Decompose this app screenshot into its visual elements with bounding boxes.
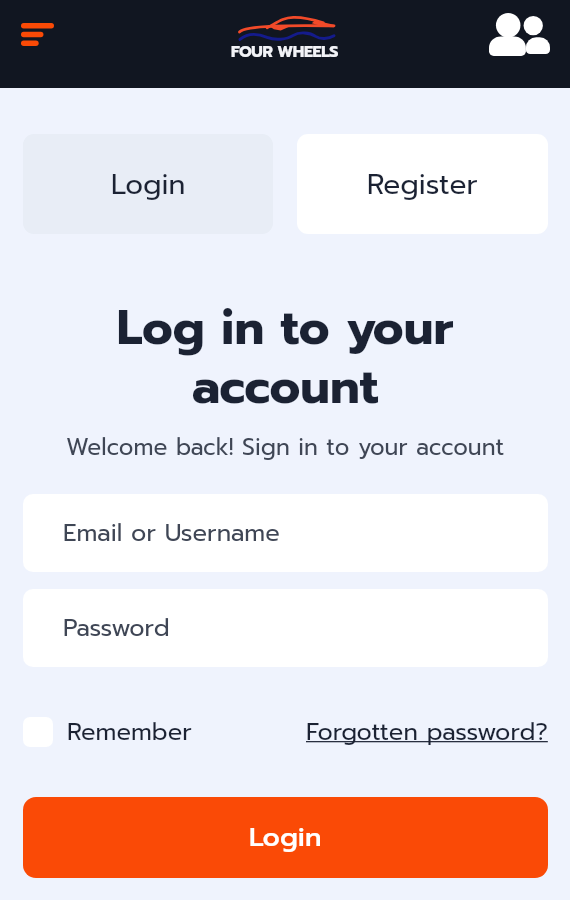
button[interactable]: Account [480, 6, 558, 82]
staticText: Email or Username [63, 515, 280, 551]
staticText: Login [249, 817, 322, 858]
button[interactable]: Login [23, 134, 273, 234]
button[interactable]: Register [297, 134, 548, 234]
button[interactable]: Login [23, 797, 548, 878]
staticText: Welcome back! Sign in to your account [0, 430, 570, 465]
button[interactable]: Email or Username [23, 494, 548, 572]
staticText: Login [111, 163, 186, 205]
staticText: Remember [67, 714, 192, 750]
staticText: Log in to your account [0, 292, 570, 423]
staticText: Forgotten password? [306, 714, 548, 750]
staticText: Register [367, 163, 478, 205]
button[interactable]: Password [23, 589, 548, 667]
button[interactable]: Remember [23, 710, 547, 754]
staticText: Password [63, 610, 170, 646]
button[interactable]: Menu [5, 7, 70, 81]
staticText: FOUR WHEELS [231, 40, 339, 64]
button[interactable]: Forgotten password? [300, 710, 548, 754]
